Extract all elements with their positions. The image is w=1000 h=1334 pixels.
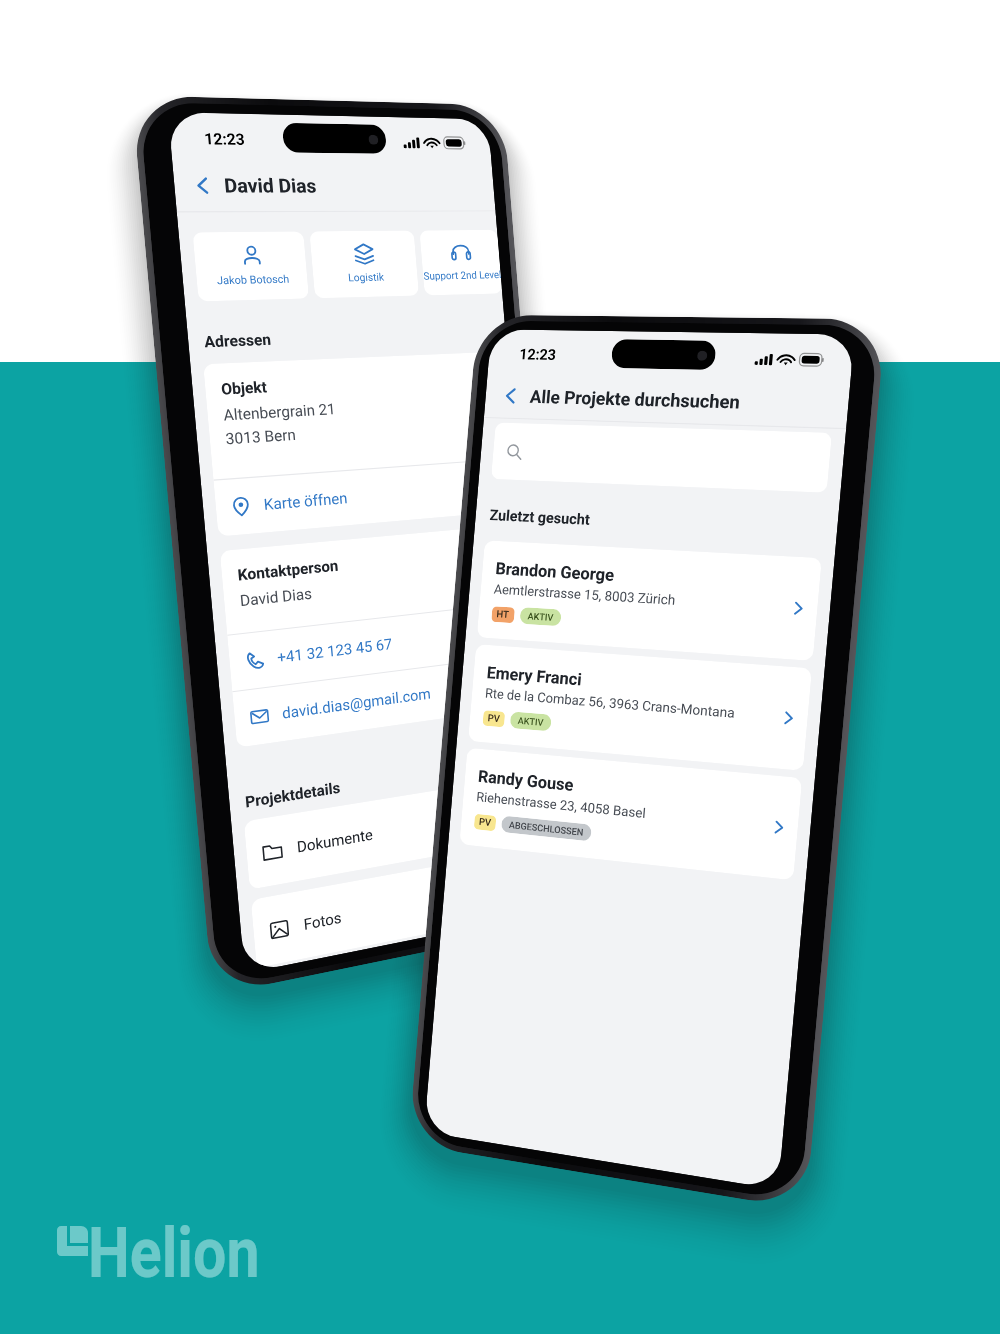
button[interactable]: +41 32 123 45 67 xyxy=(227,603,521,691)
staticText: Zuletzt gesucht xyxy=(489,506,592,529)
staticText: HT xyxy=(496,608,510,621)
button[interactable]: Jakob Botosch xyxy=(192,231,309,301)
staticText: Kontaktperson xyxy=(237,556,340,585)
staticText: david.dias@gmail.com xyxy=(281,685,431,723)
staticText: +41 32 123 45 67 xyxy=(276,635,394,667)
staticText: David Dias xyxy=(239,584,313,610)
staticText: ABGESCHLOSSEN xyxy=(509,819,584,838)
button[interactable]: Brandon George xyxy=(477,540,822,661)
button[interactable]: Back xyxy=(188,172,216,198)
staticText: 12:23 xyxy=(203,130,246,149)
button[interactable]: Karte öffnen xyxy=(213,459,509,537)
button[interactable]: Logistik xyxy=(309,230,419,298)
button[interactable]: Fotos xyxy=(251,848,542,968)
staticText: Fotos xyxy=(303,909,342,934)
staticText: Aemtlerstrasse 15, 8003 Zürich xyxy=(493,581,677,608)
button[interactable]: Emery Franci xyxy=(468,644,812,771)
staticText: Rte de la Combaz 56, 3963 Crans-Montana xyxy=(484,685,736,721)
staticText: 3013 Bern xyxy=(225,426,297,448)
staticText: Objekt xyxy=(220,378,268,399)
staticText: Jakob Botosch xyxy=(216,272,290,286)
staticText: Riehenstrasse 23, 4058 Basel xyxy=(476,788,647,821)
button[interactable]: Dokumente xyxy=(244,775,536,890)
staticText: Dokumente xyxy=(296,826,374,857)
staticText: AKTIV xyxy=(517,715,544,728)
staticText: Brandon George xyxy=(495,558,615,585)
staticText: Karte öffnen xyxy=(263,489,349,514)
staticText: Projektdetails xyxy=(244,779,341,812)
staticText: Helion xyxy=(88,1212,260,1282)
staticText: PV xyxy=(478,816,492,829)
staticText: Alle Projekte durchsuchen xyxy=(529,386,741,412)
button[interactable]: Randy Gouse xyxy=(459,748,802,880)
staticText: AKTIV xyxy=(527,610,554,623)
button[interactable]: Search xyxy=(491,422,832,493)
button[interactable]: Back xyxy=(498,383,523,407)
staticText: David Dias xyxy=(223,174,317,197)
staticText: Support 2nd Level xyxy=(423,268,501,282)
button[interactable]: david.dias@gmail.com xyxy=(232,655,525,748)
staticText: Randy Gouse xyxy=(477,766,575,795)
staticText: Emery Franci xyxy=(486,662,583,689)
staticText: Altenbergrain 21 xyxy=(223,400,336,425)
staticText: 12:23 xyxy=(519,345,557,364)
staticText: PV xyxy=(487,712,500,725)
button[interactable]: Support 2nd Level xyxy=(419,230,502,295)
staticText: Adressen xyxy=(203,330,272,351)
staticText: Logistik xyxy=(347,271,384,283)
